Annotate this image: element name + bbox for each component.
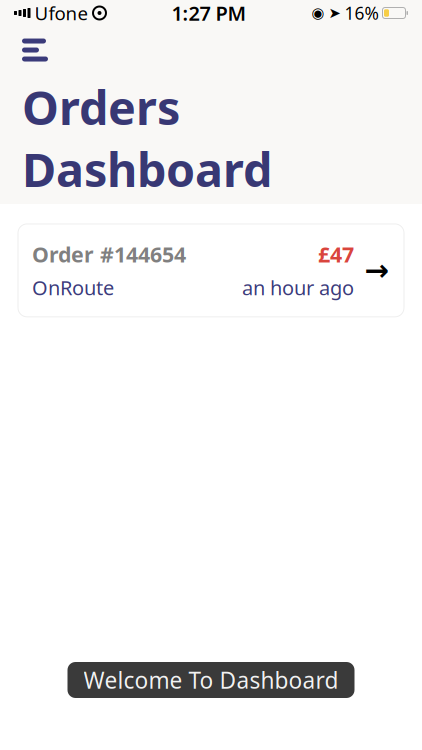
staticText: 1:27 PM [171,0,246,26]
staticText: ◉ [311,5,324,21]
staticText: ➤ [328,5,340,21]
staticText: Ufone [34,1,88,25]
staticText: Order #144654 [32,240,186,268]
staticText: 16% [344,1,378,24]
staticText: Welcome To Dashboard [83,665,338,695]
button[interactable]: Menu [0,28,66,72]
staticText: £47 [318,240,354,268]
staticText: → [364,254,389,287]
button[interactable]: Order #144654 [18,224,404,317]
staticText: an hour ago [242,274,354,301]
staticText: OnRoute [32,274,114,301]
staticText: Orders Dashboard [22,76,272,200]
